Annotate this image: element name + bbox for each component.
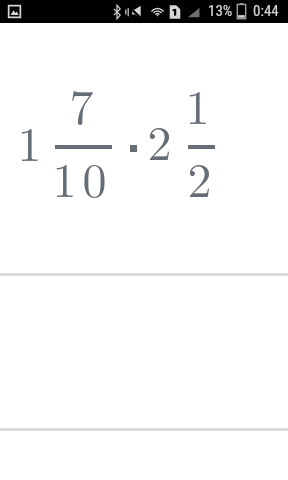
staticText: 13% (208, 2, 233, 20)
staticText: 2 (187, 143, 212, 211)
staticText: 0 (82, 143, 107, 211)
staticText: 7 (69, 70, 94, 138)
staticText: 1 (185, 70, 210, 138)
staticText: 0:44 (253, 2, 279, 20)
staticText: 1 (52, 143, 77, 211)
staticText: 1 (17, 107, 42, 175)
button[interactable]: Problem: 1 7/10 times 2 1/2 (0, 23, 288, 273)
staticText: 2 (147, 106, 172, 174)
